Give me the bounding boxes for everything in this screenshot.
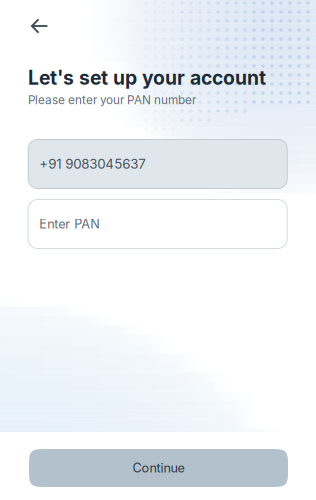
staticText: Please enter your PAN number (28, 93, 196, 107)
button[interactable]: Continue (29, 449, 288, 487)
button[interactable]: Back (17, 4, 61, 48)
staticText: +91 9083045637 (39, 156, 146, 172)
staticText: Continue (132, 460, 184, 476)
staticText: Enter PAN (39, 216, 100, 232)
staticText: Let's set up your account (28, 66, 266, 89)
